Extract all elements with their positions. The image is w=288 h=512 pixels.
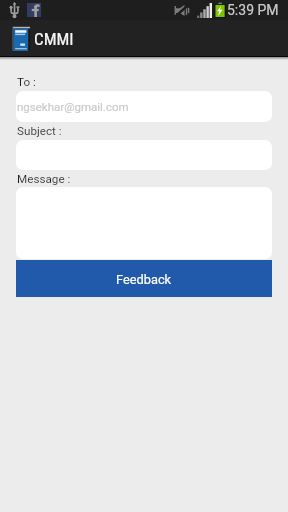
staticText: Subject : bbox=[17, 124, 62, 138]
staticText: ngsekhar@gmail.com bbox=[17, 100, 129, 113]
staticText: CMMI bbox=[34, 29, 74, 49]
other: Signal strength bbox=[197, 3, 212, 18]
staticText: Feedback bbox=[116, 272, 172, 287]
staticText: Message : bbox=[17, 172, 71, 186]
staticText: To : bbox=[17, 75, 36, 89]
other: Silent mode bbox=[175, 5, 189, 16]
other: App icon bbox=[12, 26, 30, 51]
other: Facebook bbox=[27, 3, 41, 17]
other: USB connected bbox=[10, 2, 19, 18]
button[interactable]: ngsekhar@gmail.com bbox=[16, 91, 272, 122]
staticText: 5:39 PM bbox=[227, 2, 279, 18]
button[interactable]: Feedback bbox=[16, 260, 272, 297]
other: Battery charging bbox=[214, 1, 226, 18]
